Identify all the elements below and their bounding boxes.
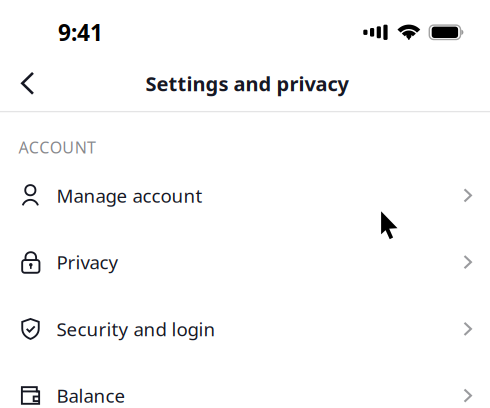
button[interactable]: Security and login [0,295,490,362]
staticText: Security and login [56,316,215,341]
staticText: Privacy [56,250,118,274]
staticText: Settings and privacy [145,70,348,97]
staticText: Manage account [56,183,202,208]
staticText: Balance [56,383,125,408]
button[interactable]: Balance [0,362,490,408]
button[interactable]: Manage account [0,162,490,229]
button[interactable]: Privacy [0,229,490,295]
button[interactable]: Back [5,60,51,106]
staticText: ACCOUNT [18,137,96,158]
staticText: 9:41 [58,17,103,47]
